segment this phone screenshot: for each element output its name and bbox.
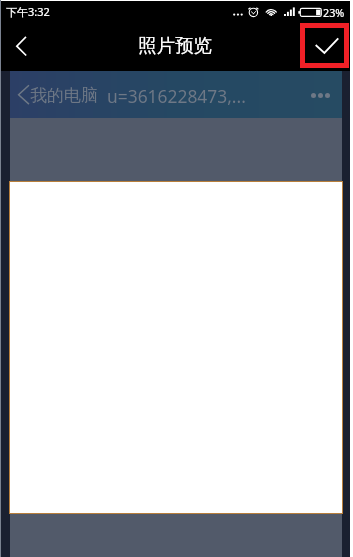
button[interactable]: More options bbox=[304, 79, 336, 111]
staticText: u=3616228473,... bbox=[107, 84, 246, 108]
staticText: 照片预览 bbox=[138, 34, 212, 57]
button[interactable]: Confirm bbox=[305, 28, 344, 63]
staticText: 下午3:32 bbox=[6, 4, 50, 19]
button[interactable]: Back bbox=[10, 75, 40, 105]
button[interactable]: Back bbox=[1, 25, 41, 65]
staticText: 我的电脑 bbox=[30, 85, 98, 106]
staticText: 23% bbox=[323, 5, 345, 20]
